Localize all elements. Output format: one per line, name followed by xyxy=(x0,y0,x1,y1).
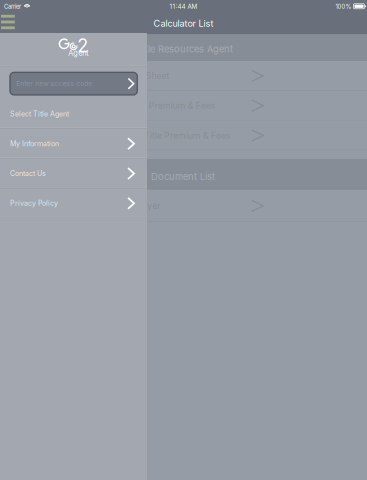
staticText: My Information xyxy=(10,139,59,148)
staticText: Calculator List xyxy=(153,18,213,29)
staticText: Enter new access code xyxy=(16,80,92,88)
button[interactable]: Loan Premium & Fees xyxy=(0,91,367,121)
staticText: Document List xyxy=(151,171,215,182)
staticText: Loan Premium & Fees xyxy=(127,100,216,111)
button[interactable]: Select Title Agent xyxy=(0,99,147,129)
button[interactable]: Flyer xyxy=(0,190,367,222)
staticText: Carrier xyxy=(4,3,21,10)
staticText: Select Title Agent xyxy=(10,110,69,118)
button[interactable]: Menu xyxy=(0,13,30,33)
staticText: 2 xyxy=(77,35,88,57)
staticText: 11:44 AM xyxy=(169,3,197,10)
staticText: 100% xyxy=(335,3,351,10)
button[interactable]: Privacy Policy xyxy=(0,188,147,218)
button[interactable]: Net Sheet xyxy=(0,61,367,91)
button[interactable]: My Information xyxy=(0,129,147,159)
button[interactable]: Contact Us xyxy=(0,159,147,188)
staticText: Owner Title Premium & Fees xyxy=(115,130,231,141)
button[interactable]: Owner Title Premium & Fees xyxy=(0,121,367,150)
staticText: Net Sheet xyxy=(128,71,169,81)
staticText: Agent xyxy=(68,48,88,57)
staticText: Contact Us xyxy=(10,169,46,178)
staticText: Privacy Policy xyxy=(10,199,58,207)
staticText: Flyer xyxy=(140,201,160,211)
button[interactable]: Enter new access code xyxy=(10,72,137,95)
staticText: Title Resources Agent xyxy=(137,43,233,55)
